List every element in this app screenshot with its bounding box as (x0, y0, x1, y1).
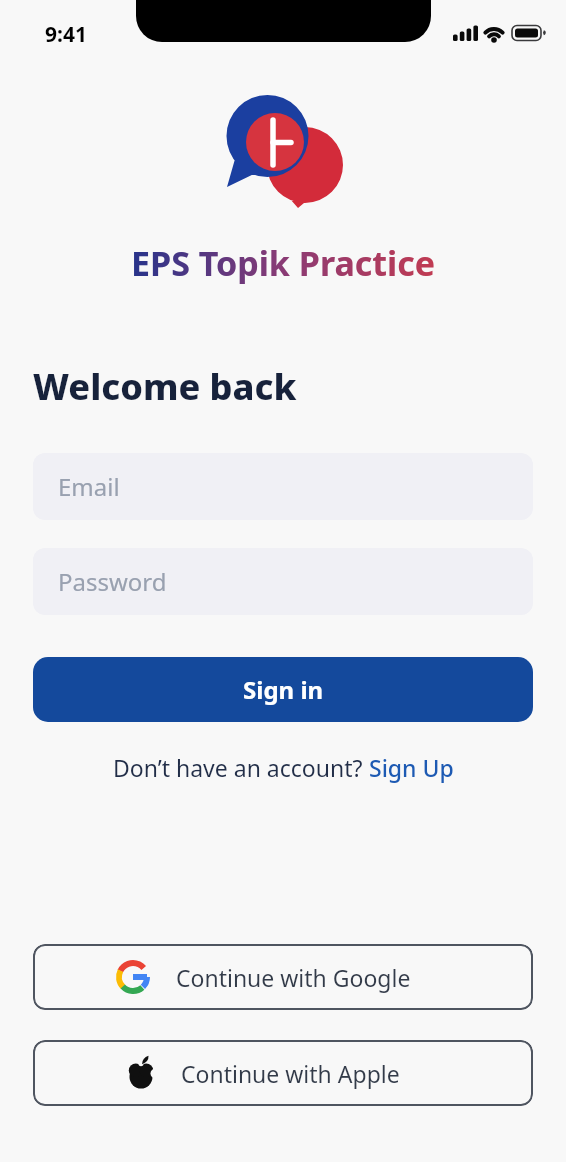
staticText: Password (58, 565, 167, 598)
button[interactable]: Password (33, 548, 533, 615)
staticText: 9:41 (45, 20, 87, 49)
staticText: Continue with Google (176, 962, 411, 993)
button[interactable]: Sign in (33, 657, 533, 722)
button[interactable]: Sign Up (369, 752, 454, 783)
staticText: Sign Up (369, 752, 454, 783)
staticText: EPS Topik Practice (131, 240, 436, 286)
staticText: Don’t have an account? (113, 752, 369, 783)
button[interactable]: Email (33, 453, 533, 520)
staticText: Sign in (243, 673, 324, 706)
staticText: Continue with Apple (181, 1058, 400, 1089)
button[interactable]: Continue with Apple (33, 1040, 533, 1106)
staticText: Welcome back (33, 362, 297, 411)
staticText: Email (58, 470, 120, 503)
button[interactable]: Continue with Google (33, 944, 533, 1010)
